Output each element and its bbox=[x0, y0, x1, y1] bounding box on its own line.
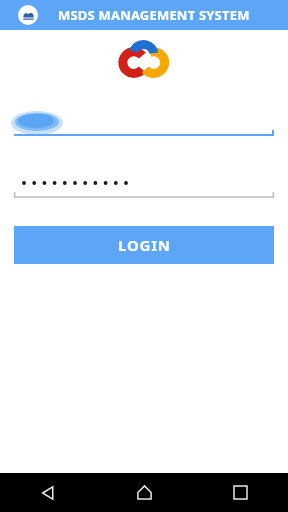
button[interactable]: Back bbox=[0, 473, 96, 512]
staticText: MSDS MANAGEMENT SYSTEM bbox=[58, 6, 250, 24]
button[interactable]: App logo bbox=[18, 5, 38, 25]
staticText: LOGIN bbox=[118, 235, 171, 255]
button[interactable]: Home bbox=[96, 473, 192, 512]
button[interactable] bbox=[14, 164, 274, 198]
button[interactable]: LOGIN bbox=[14, 226, 274, 264]
button[interactable]: Recent apps bbox=[192, 473, 288, 512]
button[interactable] bbox=[14, 102, 274, 136]
